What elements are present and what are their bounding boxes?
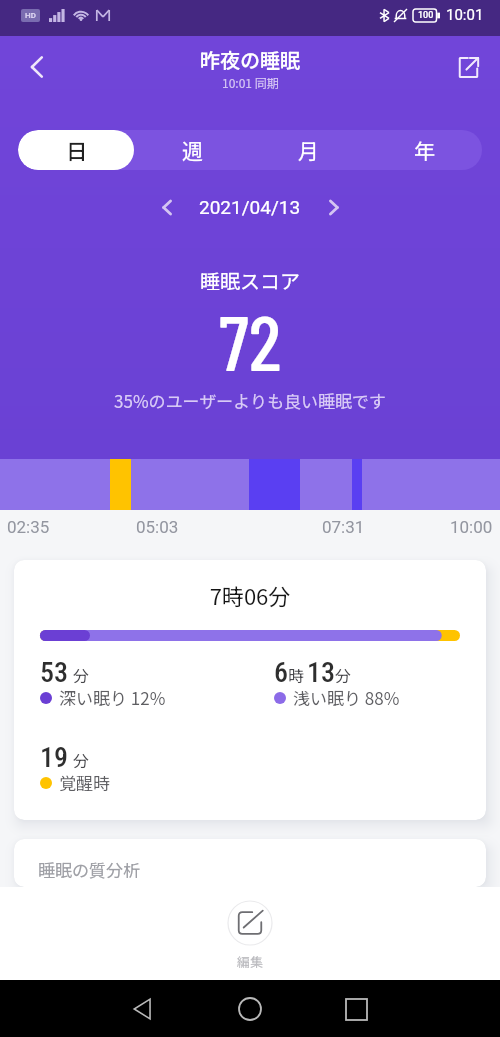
staticText: 編集 — [237, 952, 264, 971]
staticText: 07:31 — [322, 517, 365, 537]
staticText: 10:00 — [450, 517, 493, 537]
staticText: HD — [25, 11, 36, 20]
staticText: 覚醒時 — [59, 770, 110, 795]
button[interactable]: Share — [445, 44, 491, 90]
staticText: 10:01 同期 — [222, 74, 279, 91]
staticText: 7時06分 — [14, 579, 486, 611]
staticText: 月 — [298, 135, 319, 165]
staticText: 19 — [40, 741, 68, 774]
staticText: 睡眠スコア — [0, 266, 500, 295]
button[interactable]: Back — [115, 981, 171, 1037]
button[interactable]: 年 — [366, 130, 482, 170]
staticText: 分 — [73, 748, 90, 771]
staticText: 72 — [0, 293, 500, 387]
button[interactable]: 編集 — [227, 900, 273, 971]
button[interactable]: 睡眠の質分析 — [14, 839, 486, 887]
button[interactable]: Home — [222, 981, 278, 1037]
staticText: 週 — [182, 135, 203, 165]
staticText: 10:01 — [446, 6, 484, 24]
button[interactable]: 月 — [250, 130, 366, 170]
staticText: 分 — [73, 663, 90, 686]
staticText: 05:03 — [136, 517, 179, 537]
staticText: 睡眠の質分析 — [38, 857, 140, 882]
staticText: 6 — [274, 656, 288, 689]
button[interactable]: Recent apps — [328, 981, 384, 1037]
staticText: 35%のユーザーよりも良い睡眠です — [0, 388, 500, 413]
staticText: 浅い眠り 88% — [293, 685, 400, 710]
staticText: 深い眠り 12% — [59, 685, 166, 710]
button[interactable]: 週 — [134, 130, 250, 170]
button[interactable]: 日 — [18, 130, 134, 170]
staticText: 昨夜の睡眠 — [200, 45, 300, 74]
staticText: 分 — [335, 663, 352, 686]
staticText: 53 — [40, 656, 68, 689]
button[interactable]: Back — [14, 44, 60, 90]
button[interactable]: Previous day — [149, 190, 185, 224]
staticText: 2021/04/13 — [199, 196, 301, 218]
staticText: 日 — [66, 135, 87, 165]
staticText: 13 — [307, 656, 335, 689]
staticText: 時 — [288, 663, 305, 686]
staticText: 年 — [414, 135, 435, 165]
button[interactable]: Next day — [315, 190, 351, 224]
staticText: 02:35 — [7, 517, 50, 537]
staticText: 100 — [418, 10, 434, 21]
